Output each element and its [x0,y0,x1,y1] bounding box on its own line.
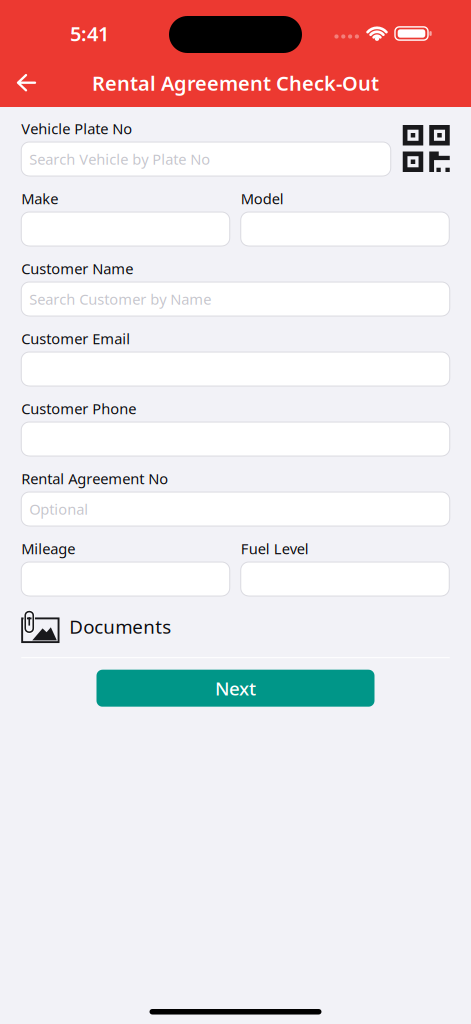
staticText: Search Vehicle by Plate No [29,149,210,169]
button[interactable]: Scan vehicle QR code [403,125,450,172]
staticText: Customer Email [21,329,130,348]
staticText: 5:41 [70,20,109,47]
staticText: Customer Phone [21,399,136,418]
staticText: Documents [69,614,171,639]
staticText: Search Customer by Name [29,289,211,309]
staticText: Rental Agreement Check-Out [92,70,379,96]
button[interactable]: Documents [21,609,171,644]
staticText: Mileage [21,539,75,558]
staticText: Fuel Level [241,539,309,558]
button[interactable]: Back [0,59,36,107]
staticText: Customer Name [21,259,133,278]
staticText: Vehicle Plate No [21,119,132,138]
staticText: Optional [29,499,88,519]
staticText: Rental Agreement No [21,469,168,488]
staticText: Next [215,676,256,701]
staticText: Model [241,189,284,208]
button[interactable]: Next [96,670,374,707]
staticText: Make [21,189,58,208]
